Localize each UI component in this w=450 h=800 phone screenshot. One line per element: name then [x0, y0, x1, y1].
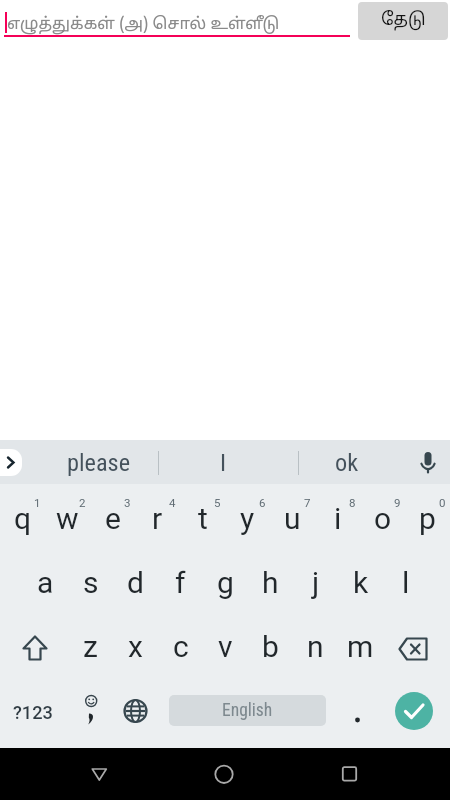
- button[interactable]: k: [338, 550, 383, 614]
- staticText: p: [419, 501, 436, 536]
- staticText: i: [334, 501, 342, 536]
- staticText: o: [374, 501, 392, 536]
- staticText: b: [262, 629, 279, 664]
- staticText: English: [222, 700, 273, 721]
- staticText: t: [198, 501, 208, 536]
- button[interactable]: r: [135, 486, 180, 550]
- button[interactable]: h: [248, 550, 293, 614]
- button[interactable]: [0, 449, 22, 476]
- staticText: 2: [79, 496, 86, 509]
- staticText: w: [56, 501, 79, 536]
- button[interactable]: m: [338, 614, 383, 678]
- staticText: f: [175, 565, 186, 600]
- staticText: l: [402, 565, 410, 600]
- staticText: y: [240, 501, 255, 536]
- staticText: எழுத்துக்கள் (அ) சொல் உள்ளீடு: [7, 15, 280, 35]
- button[interactable]: b: [248, 614, 293, 678]
- button[interactable]: x: [113, 614, 158, 678]
- staticText: s: [83, 565, 99, 600]
- button[interactable]: s: [68, 550, 113, 614]
- button[interactable]: [320, 748, 380, 800]
- staticText: m: [347, 629, 374, 664]
- staticText: u: [284, 501, 301, 536]
- button[interactable]: p: [405, 486, 450, 550]
- button[interactable]: [335, 682, 380, 742]
- staticText: z: [83, 629, 98, 664]
- button[interactable]: o: [360, 486, 405, 550]
- button[interactable]: g: [203, 550, 248, 614]
- staticText: h: [262, 565, 279, 600]
- button[interactable]: எழுத்துக்கள் (அ) சொல் உள்ளீடு: [4, 0, 350, 40]
- staticText: j: [312, 565, 320, 600]
- staticText: 1: [34, 496, 41, 509]
- staticText: r: [152, 501, 163, 536]
- button[interactable]: I: [158, 444, 288, 480]
- button[interactable]: a: [23, 550, 68, 614]
- button[interactable]: ?123: [6, 682, 60, 742]
- button[interactable]: [194, 748, 254, 800]
- staticText: I: [220, 448, 227, 476]
- staticText: 6: [259, 496, 266, 509]
- staticText: x: [128, 629, 143, 664]
- staticText: 7: [304, 496, 311, 509]
- button[interactable]: [69, 748, 129, 800]
- button[interactable]: ok: [298, 444, 396, 480]
- button[interactable]: d: [113, 550, 158, 614]
- button[interactable]: please: [40, 444, 158, 480]
- button[interactable]: [395, 692, 433, 730]
- button[interactable]: y: [225, 486, 270, 550]
- staticText: g: [217, 565, 234, 600]
- button[interactable]: j: [293, 550, 338, 614]
- button[interactable]: z: [68, 614, 113, 678]
- staticText: 4: [169, 496, 176, 509]
- button[interactable]: i: [315, 486, 360, 550]
- staticText: ?123: [13, 702, 53, 723]
- staticText: d: [127, 565, 144, 600]
- button[interactable]: [10, 624, 60, 672]
- button[interactable]: c: [158, 614, 203, 678]
- button[interactable]: e: [90, 486, 135, 550]
- staticText: a: [37, 565, 54, 600]
- staticText: 3: [124, 496, 131, 509]
- staticText: தேடு: [381, 10, 426, 32]
- button[interactable]: t: [180, 486, 225, 550]
- button[interactable]: w: [45, 486, 90, 550]
- button[interactable]: v: [203, 614, 248, 678]
- staticText: 9: [394, 496, 401, 509]
- button[interactable]: தேடு: [358, 2, 448, 40]
- button[interactable]: [113, 682, 158, 742]
- staticText: c: [173, 629, 189, 664]
- button[interactable]: [388, 624, 440, 672]
- staticText: v: [218, 629, 233, 664]
- button[interactable]: l: [383, 550, 428, 614]
- button[interactable]: q: [0, 486, 45, 550]
- staticText: please: [67, 448, 131, 476]
- button[interactable]: [410, 444, 446, 480]
- staticText: 8: [349, 496, 356, 509]
- staticText: n: [307, 629, 324, 664]
- button[interactable]: English: [169, 695, 326, 726]
- staticText: k: [353, 565, 369, 600]
- staticText: 0: [439, 496, 446, 509]
- staticText: q: [14, 501, 32, 536]
- button[interactable]: u: [270, 486, 315, 550]
- button[interactable]: n: [293, 614, 338, 678]
- button[interactable]: f: [158, 550, 203, 614]
- staticText: 5: [214, 496, 221, 509]
- button[interactable]: [68, 682, 113, 742]
- staticText: ok: [335, 448, 359, 476]
- staticText: e: [105, 501, 121, 536]
